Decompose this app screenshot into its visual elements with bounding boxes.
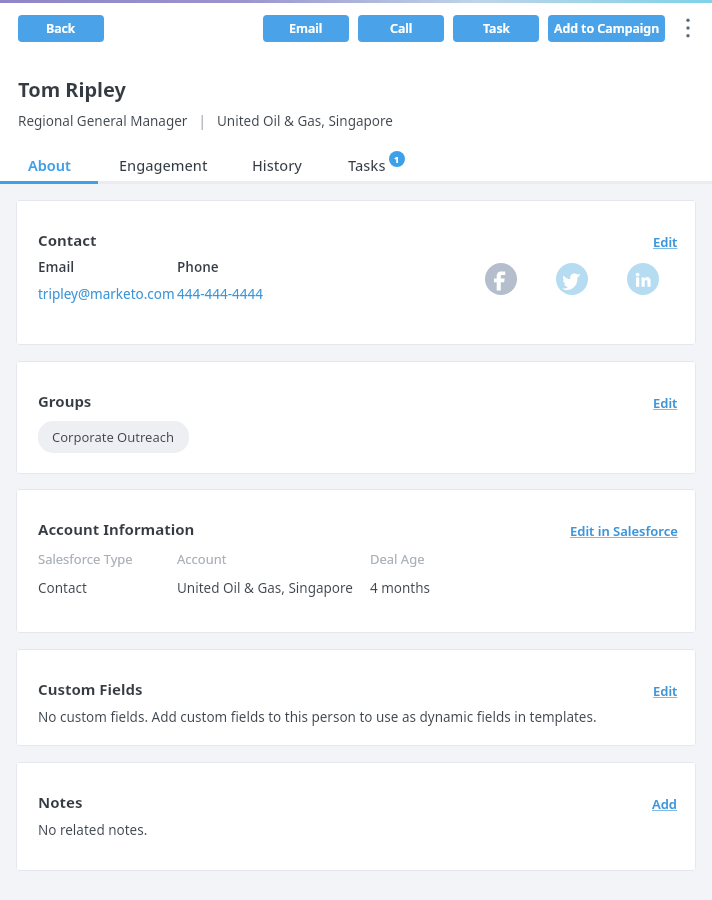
staticText: Tom Ripley <box>18 76 126 103</box>
staticText: Groups <box>38 391 92 411</box>
staticText: Custom Fields <box>38 679 143 699</box>
staticText: Account <box>177 550 227 568</box>
button[interactable]: 444-444-4444 <box>177 285 263 303</box>
button[interactable]: Call <box>358 15 444 42</box>
button[interactable]: tripley@marketo.com <box>38 285 175 303</box>
button[interactable]: History <box>228 148 327 181</box>
staticText: Notes <box>38 792 83 812</box>
staticText: Edit <box>653 233 678 251</box>
button[interactable]: Task <box>453 15 539 42</box>
staticText: Edit <box>653 682 678 700</box>
button[interactable]: Engagement <box>98 148 228 181</box>
button[interactable]: LinkedIn <box>627 263 659 295</box>
staticText: Add <box>652 795 678 813</box>
staticText: Tasks <box>348 155 386 175</box>
button[interactable]: Corporate Outreach <box>38 421 189 453</box>
staticText: Engagement <box>119 155 208 175</box>
button[interactable]: Edit <box>649 231 682 253</box>
staticText: Contact <box>38 579 87 597</box>
staticText: Regional General Manager <box>18 112 188 130</box>
staticText: History <box>252 155 303 175</box>
staticText: Contact <box>38 230 97 250</box>
button[interactable]: Edit <box>649 392 682 414</box>
staticText: Account Information <box>38 519 195 539</box>
staticText: About <box>28 155 71 175</box>
staticText: Back <box>46 20 76 37</box>
staticText: No custom fields. Add custom fields to t… <box>38 708 597 726</box>
staticText: United Oil & Gas, Singapore <box>217 112 393 130</box>
button[interactable]: About <box>0 148 98 181</box>
staticText: 4 months <box>370 579 431 597</box>
staticText: Call <box>390 20 413 37</box>
button[interactable]: Edit <box>649 680 682 702</box>
button[interactable]: Facebook <box>485 263 517 295</box>
button[interactable]: Add <box>648 793 682 815</box>
staticText: Corporate Outreach <box>52 428 175 446</box>
staticText: | <box>188 112 217 130</box>
button[interactable]: Tasks <box>327 148 407 181</box>
staticText: Email <box>289 20 323 37</box>
staticText: Phone <box>177 258 219 276</box>
staticText: Edit <box>653 394 678 412</box>
staticText: Salesforce Type <box>38 550 133 568</box>
staticText: Add to Campaign <box>554 20 660 37</box>
staticText: No related notes. <box>38 821 148 839</box>
staticText: Edit in Salesforce <box>570 522 678 540</box>
staticText: United Oil & Gas, Singapore <box>177 579 353 597</box>
staticText: Deal Age <box>370 550 425 568</box>
button[interactable]: Edit in Salesforce <box>566 520 682 542</box>
button[interactable]: Add to Campaign <box>548 15 665 42</box>
staticText: 1 <box>394 153 400 166</box>
staticText: Email <box>38 258 75 276</box>
staticText: Task <box>483 20 510 37</box>
button[interactable]: Twitter <box>556 263 588 295</box>
button[interactable]: Back <box>18 15 104 42</box>
button[interactable]: More options <box>676 11 700 45</box>
button[interactable]: Email <box>263 15 349 42</box>
